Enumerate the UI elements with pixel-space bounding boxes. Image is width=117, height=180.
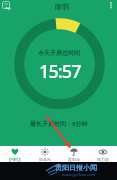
button[interactable]: 视力表 bbox=[88, 146, 117, 162]
button[interactable]: 遮阳伞 bbox=[59, 146, 88, 162]
button[interactable] bbox=[108, 2, 114, 8]
staticText: 防蓝光 bbox=[39, 157, 51, 162]
staticText: 最长开屏时间：8分钟 bbox=[30, 120, 88, 128]
staticText: 遮阳伞 bbox=[68, 157, 80, 162]
staticText: 15:57 bbox=[39, 59, 81, 84]
button[interactable]: 贵阳日报小闻 bbox=[55, 163, 97, 172]
staticText: 今天开屏总时间 bbox=[38, 49, 80, 57]
button[interactable]: 防蓝光 bbox=[30, 146, 59, 162]
button[interactable]: 眼萌 bbox=[55, 2, 69, 11]
button[interactable]: 护眼坊 bbox=[0, 146, 30, 162]
staticText: 视力表 bbox=[97, 157, 109, 162]
button[interactable] bbox=[2, 1, 11, 10]
staticText: 护眼坊 bbox=[9, 157, 21, 162]
staticText: www.gyrbxw.com bbox=[62, 172, 96, 177]
